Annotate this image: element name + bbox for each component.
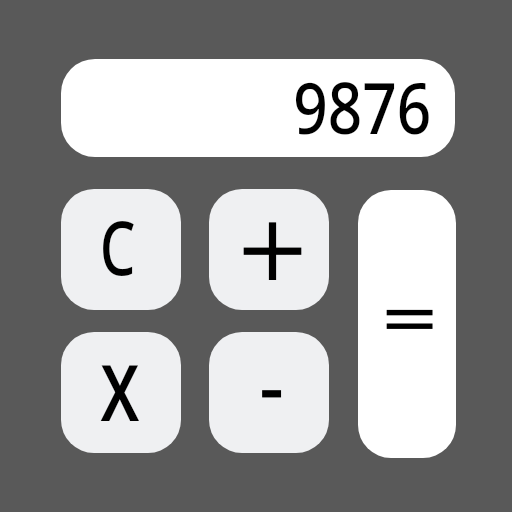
button[interactable]: Multiply (61, 332, 181, 453)
staticText: C (100, 196, 135, 297)
button[interactable]: Minus (209, 332, 329, 453)
staticText: 9876 (293, 59, 432, 155)
button[interactable]: Equals (358, 190, 456, 458)
button[interactable]: Clear (61, 189, 181, 310)
button[interactable]: Plus (209, 189, 329, 310)
button[interactable]: 9876 (61, 59, 455, 157)
staticText: X (100, 338, 139, 444)
